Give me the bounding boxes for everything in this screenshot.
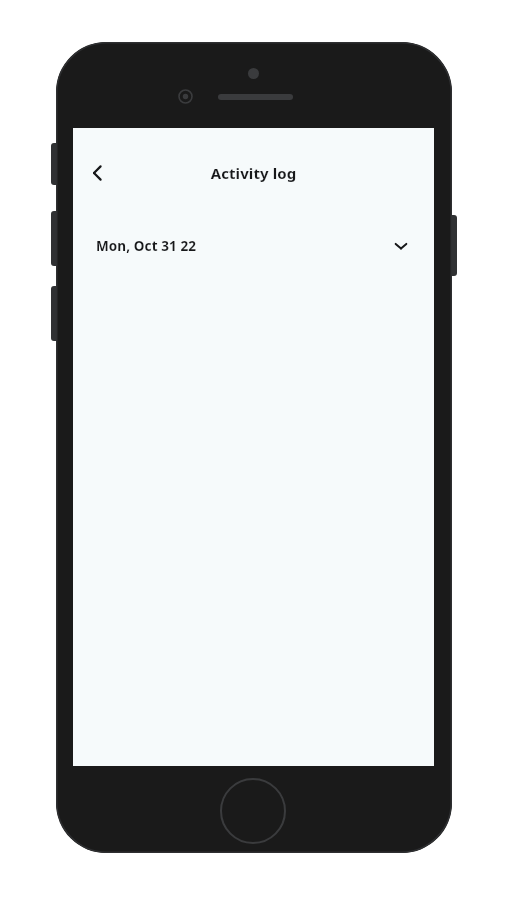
staticText: Activity log [73, 163, 434, 183]
button[interactable]: Mon, Oct 31 22 [73, 217, 434, 275]
button[interactable]: Back [80, 155, 116, 191]
staticText: Mon, Oct 31 22 [96, 237, 197, 255]
